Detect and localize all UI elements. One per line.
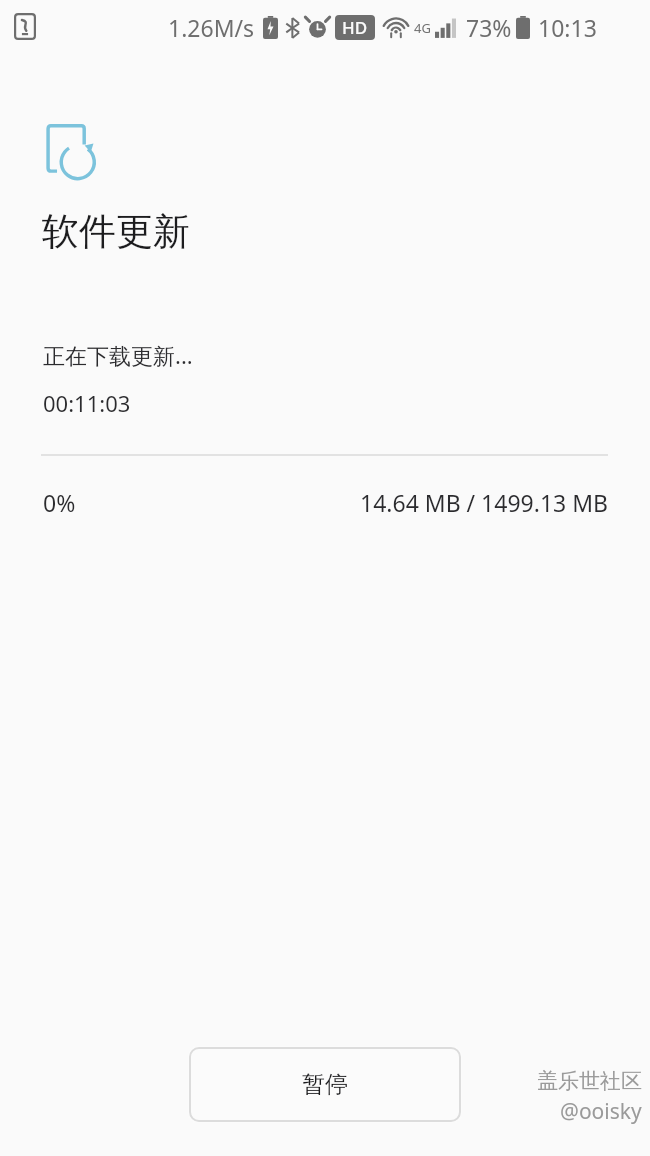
staticText: 盖乐世社区 [537,1068,642,1094]
staticText: 1.26M/s [168,12,255,43]
staticText: 软件更新 [42,208,190,255]
staticText: 00:11:03 [43,388,131,418]
staticText: 4G [414,19,431,37]
staticText: 14.64 MB / 1499.13 MB [360,487,608,518]
staticText: HD [342,16,368,39]
staticText: 73% [466,12,512,43]
staticText: 正在下载更新... [43,340,193,370]
staticText: 10:13 [538,12,597,43]
staticText: 0% [43,487,76,518]
button[interactable]: 暂停 [188,1046,462,1123]
staticText: 暂停 [302,1070,348,1099]
staticText: @ooisky [560,1097,642,1126]
